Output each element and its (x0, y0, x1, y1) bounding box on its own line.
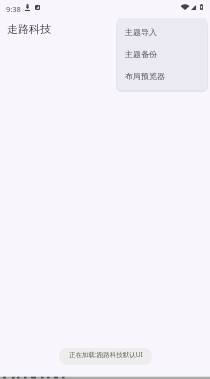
button[interactable]: 主题导入 (117, 21, 207, 43)
staticText: 正在加载:跑路科技默认UI (69, 350, 143, 359)
staticText: 走路科技 (7, 22, 51, 36)
staticText: 布局预览器 (125, 71, 165, 81)
staticText: 主题备份 (125, 49, 157, 59)
staticText: 主题导入 (125, 27, 157, 37)
button[interactable]: 布局预览器 (117, 65, 207, 87)
button[interactable]: 主题备份 (117, 43, 207, 65)
staticText: 9:38 (6, 4, 21, 14)
